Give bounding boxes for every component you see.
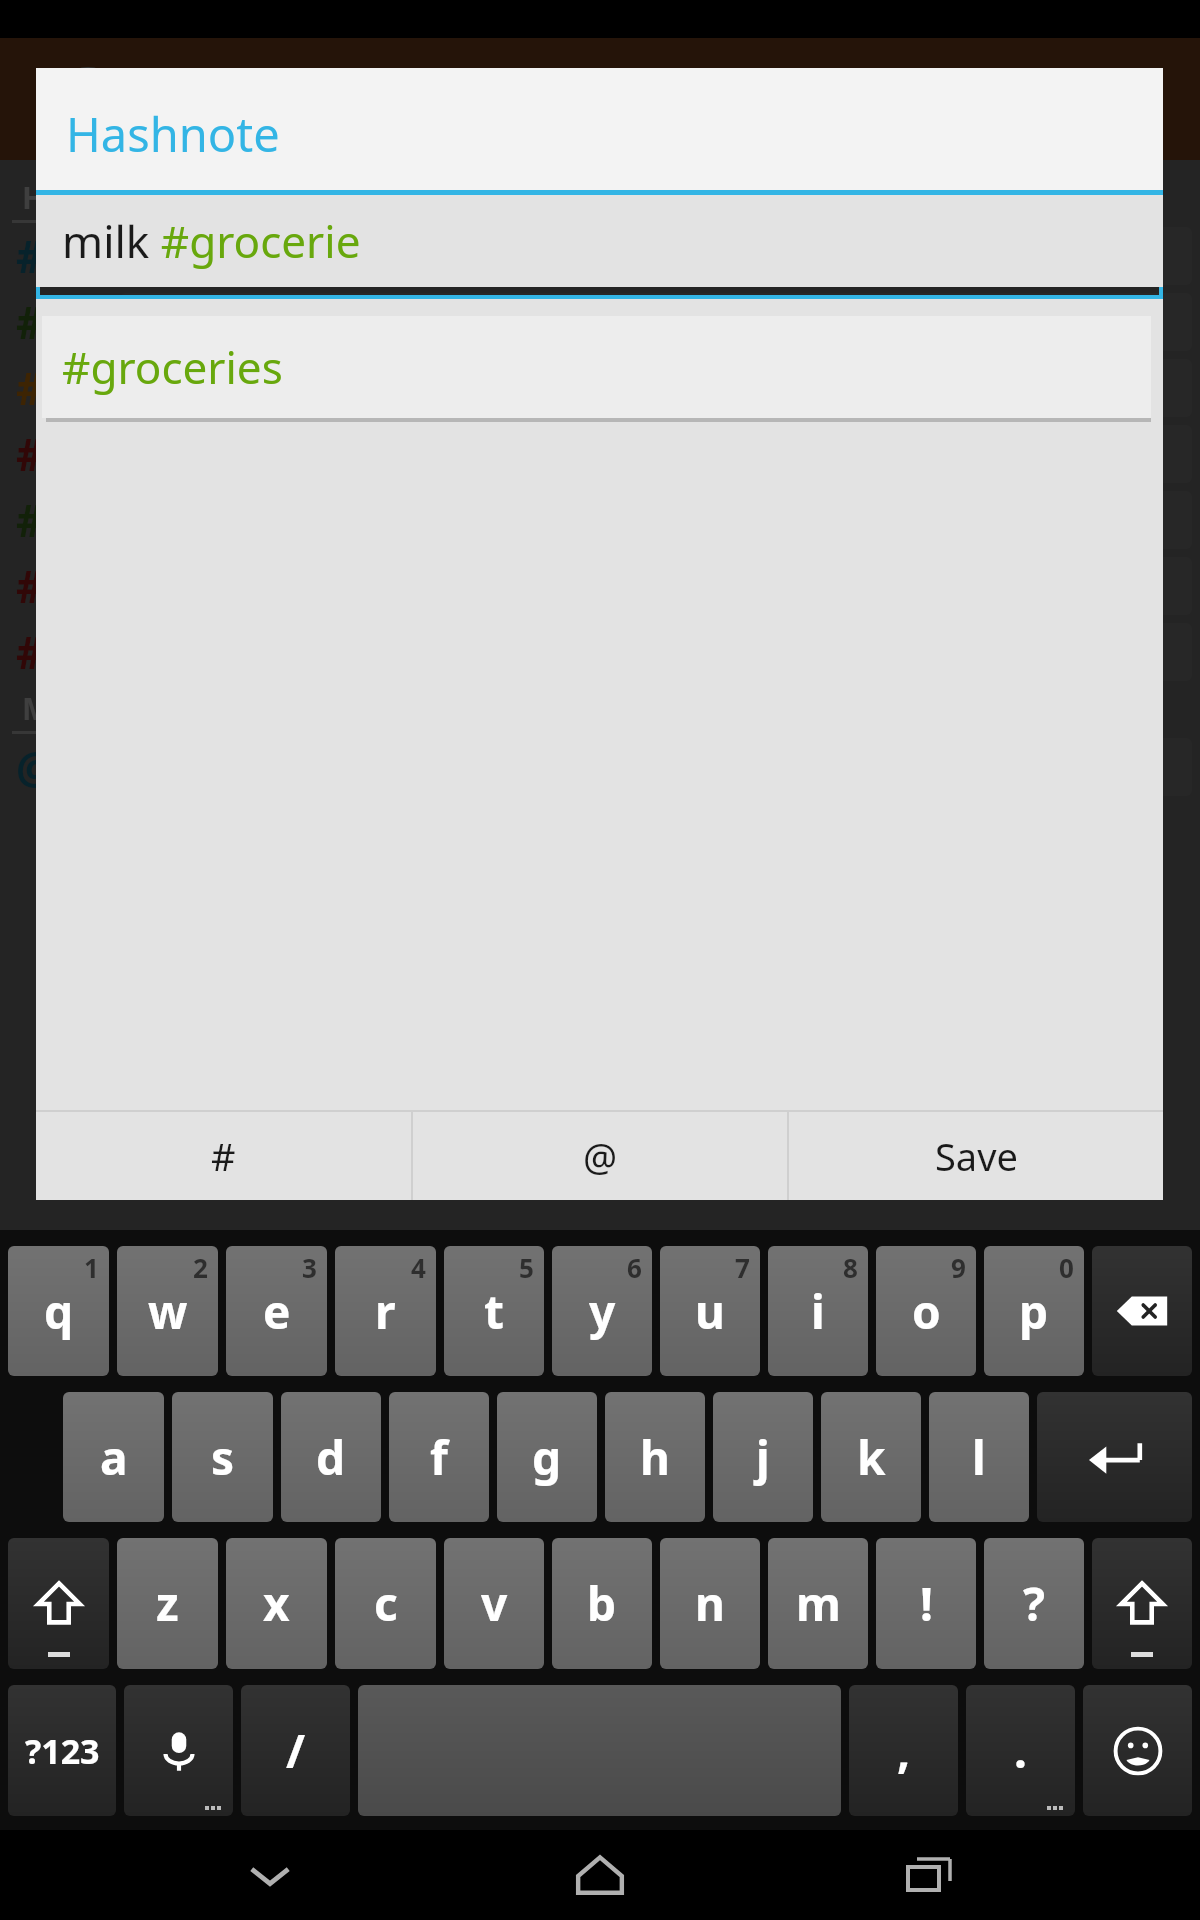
staticText: # [16,556,45,616]
button[interactable]: u [660,1246,760,1376]
button[interactable]: j [713,1392,813,1522]
button[interactable]: s [172,1392,273,1522]
staticText: Save [935,1130,1018,1182]
button[interactable]: q [8,1246,109,1376]
staticText: v [481,1572,508,1635]
staticText: # [16,622,45,682]
button[interactable]: / [241,1685,350,1816]
staticText: 5 [519,1250,534,1285]
button[interactable]: v [444,1538,544,1669]
staticText: m [796,1572,841,1635]
staticText: Hashnote [66,102,280,166]
staticText: #groceries [62,337,283,397]
staticText: f [430,1426,448,1489]
staticText: 0 [1059,1250,1074,1285]
staticText: # [16,292,45,352]
button[interactable]: d [281,1392,381,1522]
staticText: 9 [951,1250,966,1285]
staticText: ! [920,1572,933,1635]
button[interactable]: g [497,1392,597,1522]
staticText: r [375,1280,396,1343]
button[interactable]: shift [8,1538,109,1669]
staticText: @ [16,737,56,797]
button[interactable]: z [117,1538,218,1669]
staticText: n [695,1572,725,1635]
button[interactable]: i [768,1246,868,1376]
staticText: milk #grocerie [62,211,361,271]
button[interactable]: b [552,1538,652,1669]
staticText: 2 [193,1250,208,1285]
button[interactable]: enter [1037,1392,1192,1522]
button[interactable]: o [876,1246,976,1376]
staticText: a [100,1426,128,1489]
staticText: j [756,1426,770,1489]
staticText: c [374,1572,398,1635]
button[interactable]: w [117,1246,218,1376]
button[interactable]: ? [984,1538,1084,1669]
button[interactable]: m [768,1538,868,1669]
button[interactable]: milk #grocerie [36,195,1163,287]
staticText: d [316,1426,346,1489]
staticText: i [811,1280,825,1343]
staticText: e [263,1280,291,1343]
button[interactable]: Home [540,1830,660,1920]
button[interactable]: mic [124,1685,233,1816]
button[interactable]: n [660,1538,760,1669]
staticText: ?123 [25,1728,100,1774]
button[interactable]: k [821,1392,921,1522]
staticText: w [148,1280,188,1343]
button[interactable]: l [929,1392,1029,1522]
staticText: . [1014,1719,1027,1782]
staticText: 8 [843,1250,858,1285]
button[interactable]: #groceries [42,316,1151,418]
button[interactable]: x [226,1538,327,1669]
staticText: M [22,688,51,729]
button[interactable]: c [335,1538,436,1669]
staticText: h [640,1426,670,1489]
staticText: 4 [411,1250,426,1285]
staticText: k [857,1426,886,1489]
button[interactable]: Save [789,1112,1163,1200]
staticText: # [16,424,45,484]
button[interactable]: del [1092,1246,1192,1376]
button[interactable]: . [966,1685,1075,1816]
staticText: q [44,1280,74,1343]
staticText: # [16,490,45,550]
button[interactable]: t [444,1246,544,1376]
button[interactable]: emoji [1083,1685,1192,1816]
button[interactable]: Hide keyboard [210,1830,330,1920]
staticText: t [484,1280,504,1343]
button[interactable]: Recent apps [870,1830,990,1920]
staticText: # [16,358,45,418]
button[interactable] [358,1685,841,1816]
staticText: ? [1023,1572,1045,1635]
staticText: b [587,1572,617,1635]
button[interactable]: p [984,1246,1084,1376]
staticText: # [211,1130,236,1182]
button[interactable]: r [335,1246,436,1376]
staticText: 3 [302,1250,317,1285]
button[interactable]: f [389,1392,489,1522]
button[interactable]: # [36,1112,411,1200]
staticText: y [589,1280,616,1343]
button[interactable]: h [605,1392,705,1522]
staticText: l [972,1426,986,1489]
button[interactable]: ! [876,1538,976,1669]
button[interactable]: , [849,1685,958,1816]
staticText: / [286,1719,306,1782]
staticText: H [22,177,45,218]
staticText: 1 [84,1250,99,1285]
staticText: p [1019,1280,1049,1343]
button[interactable]: y [552,1246,652,1376]
staticText: u [695,1280,725,1343]
button[interactable]: ?123 [8,1685,116,1816]
button[interactable]: e [226,1246,327,1376]
staticText: o [912,1280,941,1343]
button[interactable]: @ [413,1112,787,1200]
staticText: @ [583,1130,618,1182]
staticText: x [263,1572,290,1635]
button[interactable]: shift [1092,1538,1192,1669]
staticText: g [532,1426,562,1489]
button[interactable]: a [63,1392,164,1522]
staticText: 6 [627,1250,642,1285]
